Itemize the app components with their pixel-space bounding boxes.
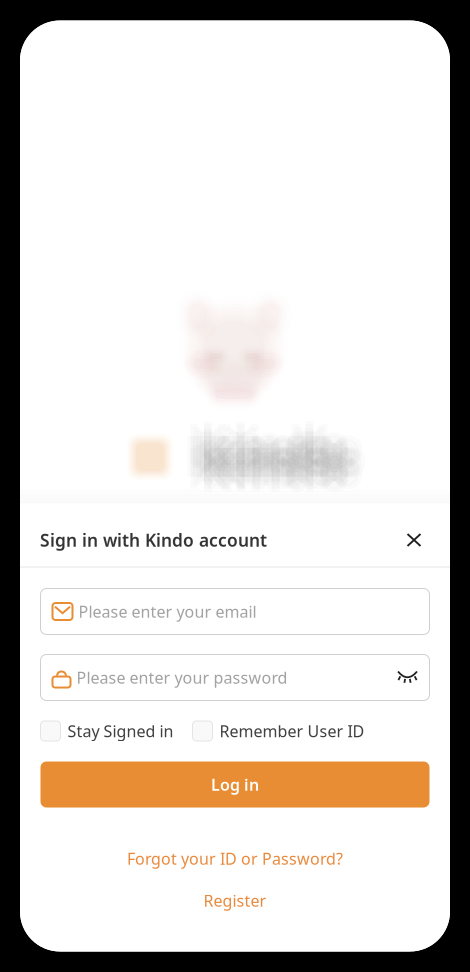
staticText: kindo (194, 421, 345, 491)
staticText: kindo (206, 427, 357, 497)
staticText: kindo (185, 409, 336, 479)
staticText: kindo (192, 427, 343, 497)
staticText: Stay Signed in (67, 720, 173, 742)
staticText: kindo (203, 417, 354, 487)
staticText: kindo (199, 421, 350, 491)
staticText: kindo (195, 425, 346, 495)
staticText: kindo (213, 433, 364, 503)
staticText: Forgot your ID or Password? (127, 848, 343, 869)
staticText: kindo (199, 409, 350, 479)
staticText: Remember User ID (219, 720, 364, 742)
staticText: kindo (208, 421, 359, 491)
staticText: kindo (199, 429, 350, 499)
staticText: Log in (211, 774, 259, 795)
staticText: kindo (203, 425, 354, 495)
staticText: Sign in with Kindo account (40, 528, 267, 551)
staticText: kindo (185, 433, 336, 503)
staticText: kindo (210, 430, 361, 500)
staticText: kindo (199, 433, 350, 503)
staticText: kindo (188, 412, 339, 482)
button[interactable]: Register (40, 889, 429, 911)
staticText: Register (203, 890, 266, 911)
staticText: kindo (204, 421, 355, 491)
staticText: kindo (190, 421, 341, 491)
staticText: kindo (213, 409, 364, 479)
button[interactable]: Close (397, 518, 431, 552)
staticText: kindo (206, 415, 357, 485)
staticText: kindo (195, 417, 346, 487)
button[interactable]: Show password (392, 665, 422, 689)
staticText: kindo (192, 415, 343, 485)
staticText: Please enter your password (76, 667, 287, 688)
staticText: kindo (199, 436, 350, 506)
staticText: kindo (188, 430, 339, 500)
staticText: kindo (182, 421, 333, 491)
staticText: Please enter your email (78, 601, 256, 622)
staticText: kindo (199, 416, 350, 486)
button[interactable]: Forgot your ID or Password? (40, 847, 429, 869)
staticText: kindo (210, 412, 361, 482)
staticText: kindo (216, 421, 367, 491)
staticText: kindo (186, 421, 337, 491)
button[interactable]: Log in (40, 761, 429, 807)
staticText: kindo (199, 406, 350, 476)
staticText: kindo (199, 413, 350, 483)
button[interactable]: Remember User ID (192, 720, 364, 742)
staticText: kindo (212, 421, 363, 491)
button[interactable]: Stay Signed in (40, 720, 173, 742)
staticText: kindo (199, 426, 350, 496)
